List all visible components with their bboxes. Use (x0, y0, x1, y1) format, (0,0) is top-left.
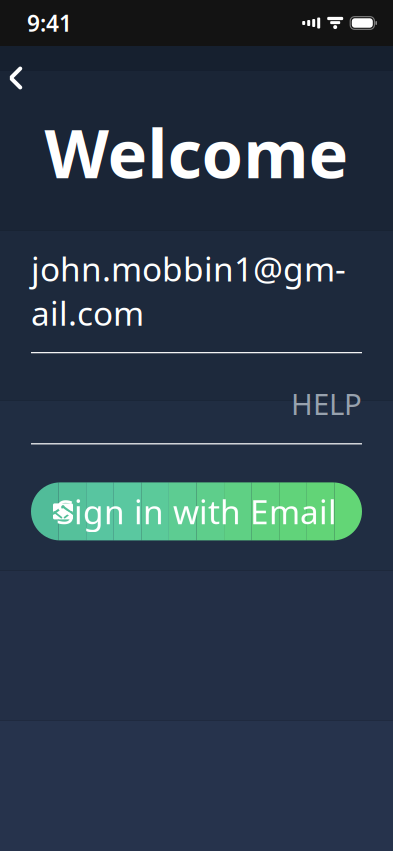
button[interactable]: HELP (273, 380, 362, 427)
button[interactable]: Sign in with Email (31, 482, 362, 540)
staticText: HELP (291, 384, 362, 423)
staticText: Sign in with Email (56, 489, 337, 534)
staticText: john.mobbin1@gmail.com (31, 246, 346, 335)
button[interactable]: Back (0, 54, 37, 102)
staticText: 9:41 (27, 8, 72, 38)
staticText: Welcome (44, 108, 348, 196)
